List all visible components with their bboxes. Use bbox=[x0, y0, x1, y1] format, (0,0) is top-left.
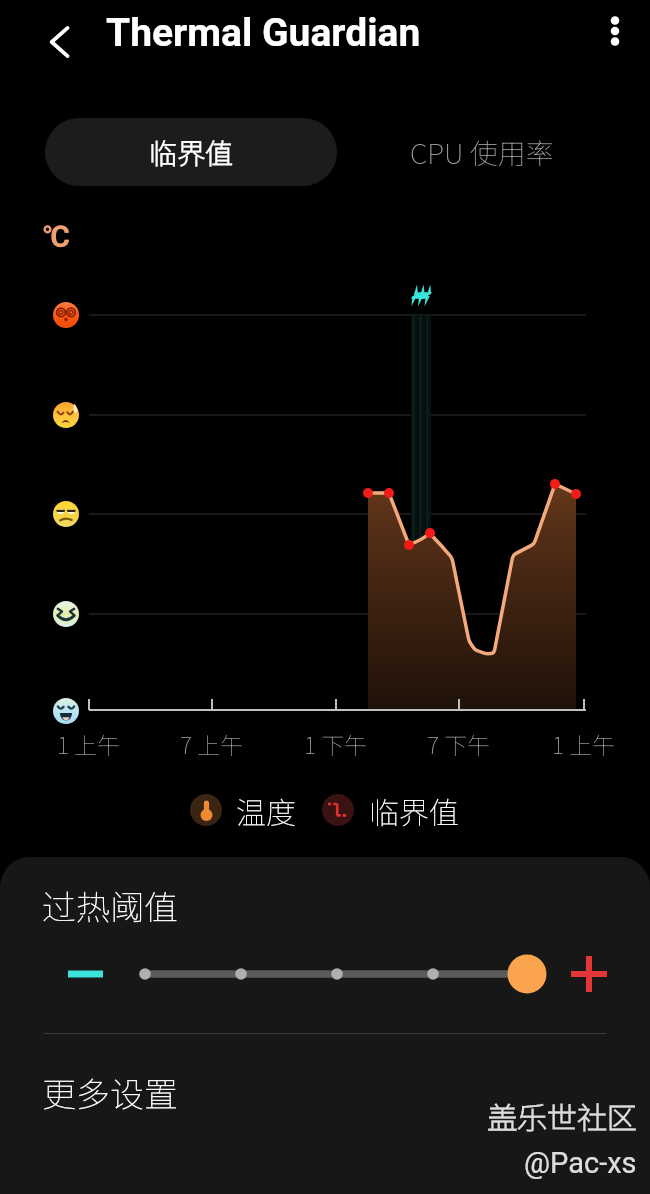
button[interactable]: 温度 bbox=[190, 789, 459, 831]
staticText: 1 上午 bbox=[552, 727, 616, 760]
staticText: Thermal Guardian bbox=[106, 10, 421, 56]
staticText: ℃ bbox=[43, 219, 70, 254]
staticText: 1 下午 bbox=[304, 727, 368, 760]
staticText: @Pac-xs bbox=[524, 1146, 637, 1180]
staticText: 温度 bbox=[236, 789, 296, 831]
staticText: CPU 使用率 bbox=[410, 132, 554, 173]
button[interactable]: More options bbox=[589, 5, 641, 57]
staticText: 7 下午 bbox=[427, 727, 491, 760]
staticText: 临界值 bbox=[149, 132, 234, 173]
staticText: 7 上午 bbox=[180, 727, 244, 760]
staticText: 临界值 bbox=[369, 789, 459, 831]
staticText: 盖乐世社区 bbox=[487, 1094, 637, 1137]
staticText: 1 上午 bbox=[57, 727, 121, 760]
button[interactable] bbox=[0, 942, 650, 1006]
button[interactable]: Back bbox=[33, 15, 87, 69]
staticText: 更多设置 bbox=[42, 1068, 178, 1117]
staticText: 过热阈值 bbox=[42, 881, 178, 930]
button[interactable]: 更多设置 bbox=[0, 1047, 650, 1147]
button[interactable]: 临界值 bbox=[45, 118, 337, 186]
button[interactable]: CPU 使用率 bbox=[337, 118, 627, 186]
